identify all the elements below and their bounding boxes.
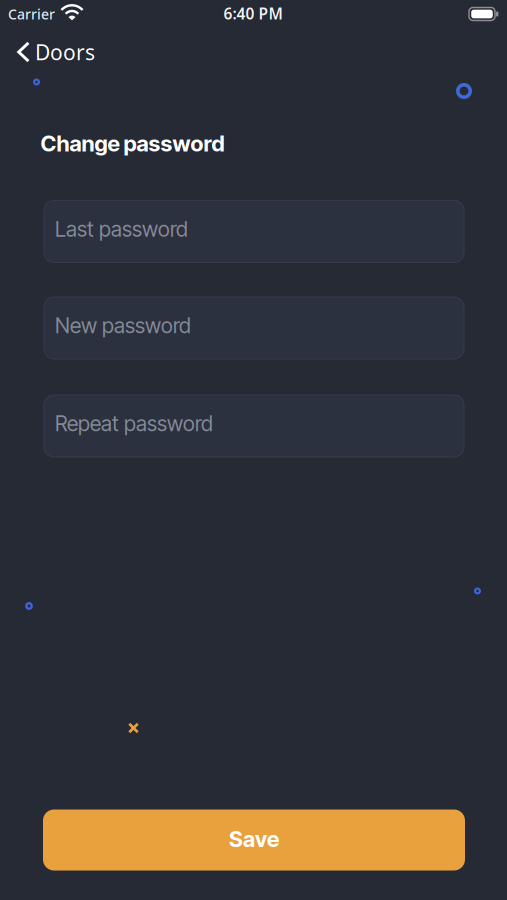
button[interactable]: Last password [44, 200, 464, 262]
button[interactable]: Repeat password [44, 395, 464, 457]
staticText: Carrier [8, 4, 55, 24]
staticText: Doors [35, 38, 95, 66]
staticText: New password [55, 313, 191, 338]
staticText: Repeat password [55, 411, 213, 436]
staticText: 6:40 PM [223, 3, 282, 24]
staticText: Save [229, 826, 279, 852]
staticText: Last password [55, 216, 188, 242]
button[interactable]: Save [43, 809, 465, 870]
button[interactable]: Back [17, 38, 95, 66]
button[interactable]: New password [44, 297, 464, 359]
staticText: Change password [40, 130, 224, 157]
